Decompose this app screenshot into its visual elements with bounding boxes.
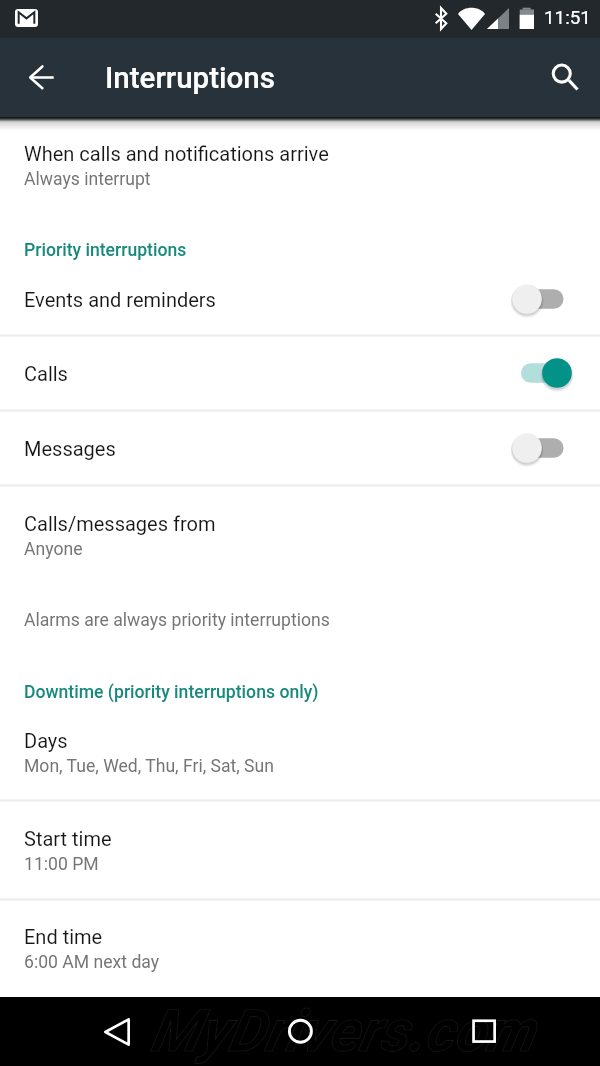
button[interactable]: Events and reminders	[0, 262, 600, 337]
staticText: Interruptions	[105, 61, 275, 96]
staticText: End time	[24, 925, 103, 948]
button[interactable]: Search	[538, 41, 586, 89]
staticText: Mon, Tue, Wed, Thu, Fri, Sat, Sun	[24, 756, 274, 777]
staticText: Start time	[24, 827, 112, 850]
staticText: Always interrupt	[24, 169, 151, 190]
button[interactable]: Calls	[0, 336, 600, 411]
staticText: When calls and notifications arrive	[24, 142, 329, 165]
staticText: Downtime (priority interruptions only)	[24, 682, 319, 703]
button[interactable]: Recent apps	[454, 1001, 514, 1061]
staticText: Calls	[24, 362, 68, 385]
staticText: Priority interruptions	[24, 240, 187, 261]
button[interactable]: Days	[0, 721, 600, 800]
staticText: Days	[24, 729, 68, 752]
staticText: MyDrivers.com	[150, 997, 534, 1065]
button[interactable]: Messages	[0, 411, 600, 486]
staticText: 11:00 PM	[24, 854, 99, 875]
button[interactable]: Calls/messages from	[0, 504, 600, 586]
staticText: 6:00 AM next day	[24, 952, 160, 973]
button[interactable]: Back	[87, 1001, 147, 1061]
button[interactable]: Start time	[0, 819, 600, 899]
staticText: Anyone	[24, 539, 83, 560]
staticText: 11:51	[544, 7, 591, 29]
staticText: Messages	[24, 437, 116, 460]
button[interactable]: Home	[270, 1001, 330, 1061]
button[interactable]: Back	[17, 41, 65, 89]
button[interactable]: When calls and notifications arrive	[0, 134, 600, 214]
button[interactable]: End time	[0, 917, 600, 997]
staticText: Alarms are always priority interruptions	[24, 610, 330, 631]
staticText: Calls/messages from	[24, 512, 216, 535]
staticText: Events and reminders	[24, 288, 216, 311]
